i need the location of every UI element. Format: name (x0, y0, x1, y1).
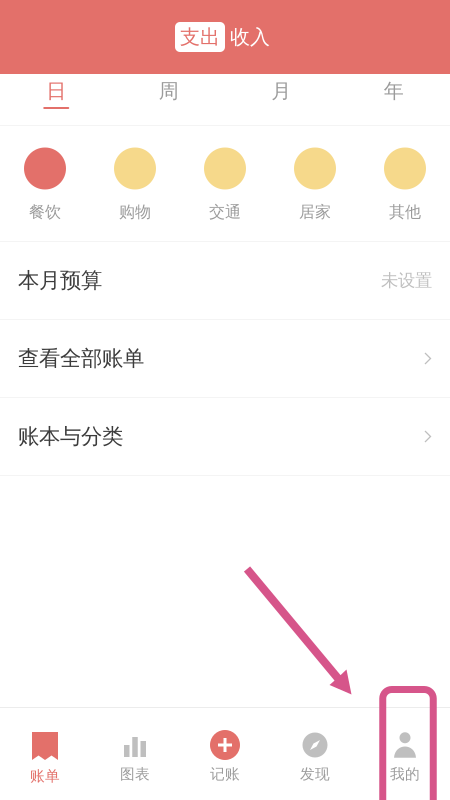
staticText: 日 (46, 78, 66, 104)
button[interactable]: 周 (112, 74, 225, 125)
button[interactable]: 交通 (180, 125, 270, 241)
button[interactable]: 我的 (360, 708, 450, 800)
staticText: 查看全部账单 (18, 345, 144, 372)
button[interactable]: 发现 (270, 708, 360, 800)
button[interactable]: 图表 (90, 708, 180, 800)
staticText: 图表 (120, 765, 150, 783)
staticText: 餐饮 (29, 202, 61, 222)
staticText: 其他 (389, 202, 421, 222)
staticText: 未设置 (381, 270, 432, 291)
button[interactable]: 查看全部账单 (0, 320, 450, 398)
staticText: 我的 (390, 765, 420, 783)
staticText: 记账 (210, 765, 240, 783)
button[interactable]: 账单 (0, 708, 90, 800)
staticText: 发现 (300, 765, 330, 783)
button[interactable]: 月 (225, 74, 337, 125)
staticText: 本月预算 (18, 267, 102, 294)
staticText: 居家 (299, 202, 331, 222)
staticText: 周 (159, 78, 179, 104)
staticText: 账单 (30, 767, 60, 785)
button[interactable]: 餐饮 (0, 125, 90, 241)
button[interactable]: 本月预算 (0, 242, 450, 320)
staticText: 交通 (209, 202, 241, 222)
button[interactable]: 支出 (175, 22, 225, 52)
button[interactable]: 日 (0, 74, 112, 125)
staticText: 支出 (180, 24, 220, 50)
staticText: 月 (271, 78, 291, 104)
button[interactable]: 购物 (90, 125, 180, 241)
button[interactable]: Add transaction (180, 708, 270, 800)
button[interactable]: 其他 (360, 125, 450, 241)
staticText: 账本与分类 (18, 423, 123, 450)
staticText: 收入 (230, 24, 270, 50)
button[interactable]: 账本与分类 (0, 398, 450, 476)
button[interactable]: 收入 (225, 22, 275, 52)
staticText: 年 (384, 78, 404, 104)
button[interactable]: 年 (337, 74, 450, 125)
staticText: 购物 (119, 202, 151, 222)
button[interactable]: 居家 (270, 125, 360, 241)
